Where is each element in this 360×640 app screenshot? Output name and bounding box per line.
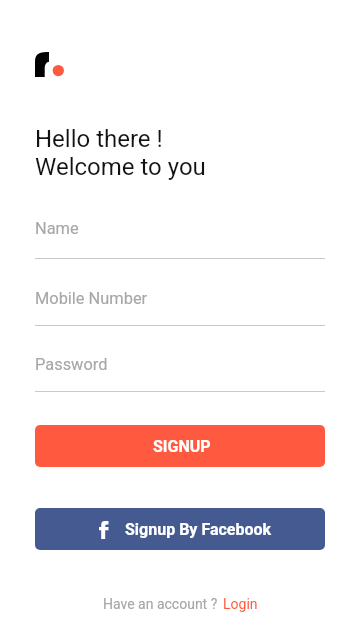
button[interactable]: Password	[35, 349, 325, 395]
button[interactable]: Name	[35, 213, 325, 262]
other: Facebook	[99, 521, 109, 539]
staticText: Password	[35, 355, 108, 374]
staticText: Mobile Number	[35, 289, 148, 308]
staticText: Have an account ?	[103, 596, 218, 612]
staticText: Signup By Facebook	[125, 520, 272, 539]
button[interactable]: Facebook	[35, 508, 325, 550]
button[interactable]: Login	[223, 596, 258, 612]
staticText: Hello there !	[35, 125, 163, 153]
staticText: SIGNUP	[153, 437, 211, 456]
other: Logo	[35, 52, 65, 77]
staticText: Name	[35, 219, 79, 238]
staticText: Welcome to you	[35, 153, 206, 181]
button[interactable]: SIGNUP	[35, 425, 325, 467]
button[interactable]: Mobile Number	[35, 283, 325, 329]
